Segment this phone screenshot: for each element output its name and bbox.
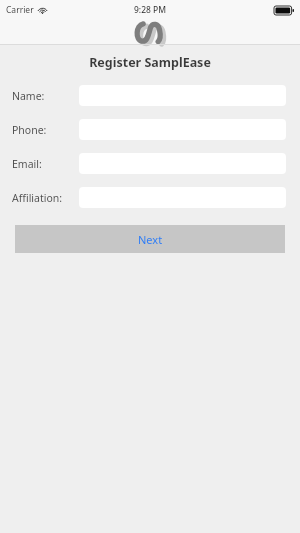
staticText: Name: — [12, 89, 45, 103]
staticText: Phone: — [12, 123, 47, 137]
staticText: Carrier — [6, 4, 34, 16]
staticText: 9:28 PM — [134, 4, 167, 16]
staticText: Next — [138, 232, 163, 247]
staticText: Register SamplEase — [89, 54, 211, 71]
staticText: Email: — [12, 157, 42, 171]
staticText: Affiliation: — [12, 191, 63, 205]
button[interactable]: Next — [15, 225, 285, 253]
